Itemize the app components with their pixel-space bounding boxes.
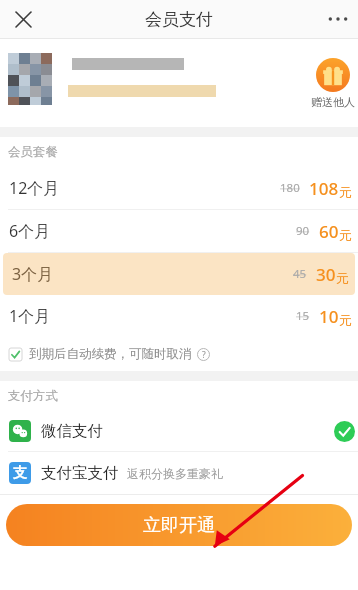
button[interactable]: 立即开通 [6,504,352,546]
button[interactable]: 6个月 [0,210,358,252]
button[interactable]: 12个月 [0,167,358,209]
staticText: 支付宝支付 [41,463,119,483]
staticText: 3个月 [12,263,54,285]
button[interactable]: 1个月 [0,295,358,337]
staticText: 10 [319,305,339,328]
staticText: 90 [296,223,310,239]
button[interactable]: 3个月 [3,253,355,295]
staticText: 元 [339,312,352,328]
button[interactable]: 微信支付 [0,411,358,451]
staticText: ? [202,349,206,361]
staticText: 会员套餐 [8,144,58,160]
staticText: 108 [309,177,339,200]
button[interactable]: Close [6,2,40,36]
staticText: 会员支付 [145,9,213,30]
staticText: 支付方式 [8,388,58,404]
staticText: 到期后自动续费，可随时取消 [29,346,192,362]
button[interactable]: 赠送他人 [311,58,355,109]
staticText: 元 [339,227,352,243]
staticText: 1个月 [9,305,51,327]
button[interactable]: More options [320,1,356,37]
staticText: 30 [316,263,336,286]
staticText: 元 [339,184,352,200]
staticText: 12个月 [9,177,60,199]
staticText: 元 [336,270,349,286]
button[interactable]: 到期后自动续费，可随时取消 [0,337,358,371]
staticText: 60 [319,220,339,243]
staticText: 返积分换多重豪礼 [127,466,223,481]
button[interactable]: Help [197,348,210,361]
staticText: 立即开通 [143,514,215,537]
staticText: 支 [13,464,27,482]
button[interactable]: 支 [0,452,358,494]
staticText: 180 [280,180,300,196]
staticText: 45 [293,266,307,282]
staticText: 6个月 [9,220,51,242]
staticText: 微信支付 [41,421,103,441]
staticText: 15 [296,308,310,324]
staticText: 赠送他人 [311,95,355,109]
